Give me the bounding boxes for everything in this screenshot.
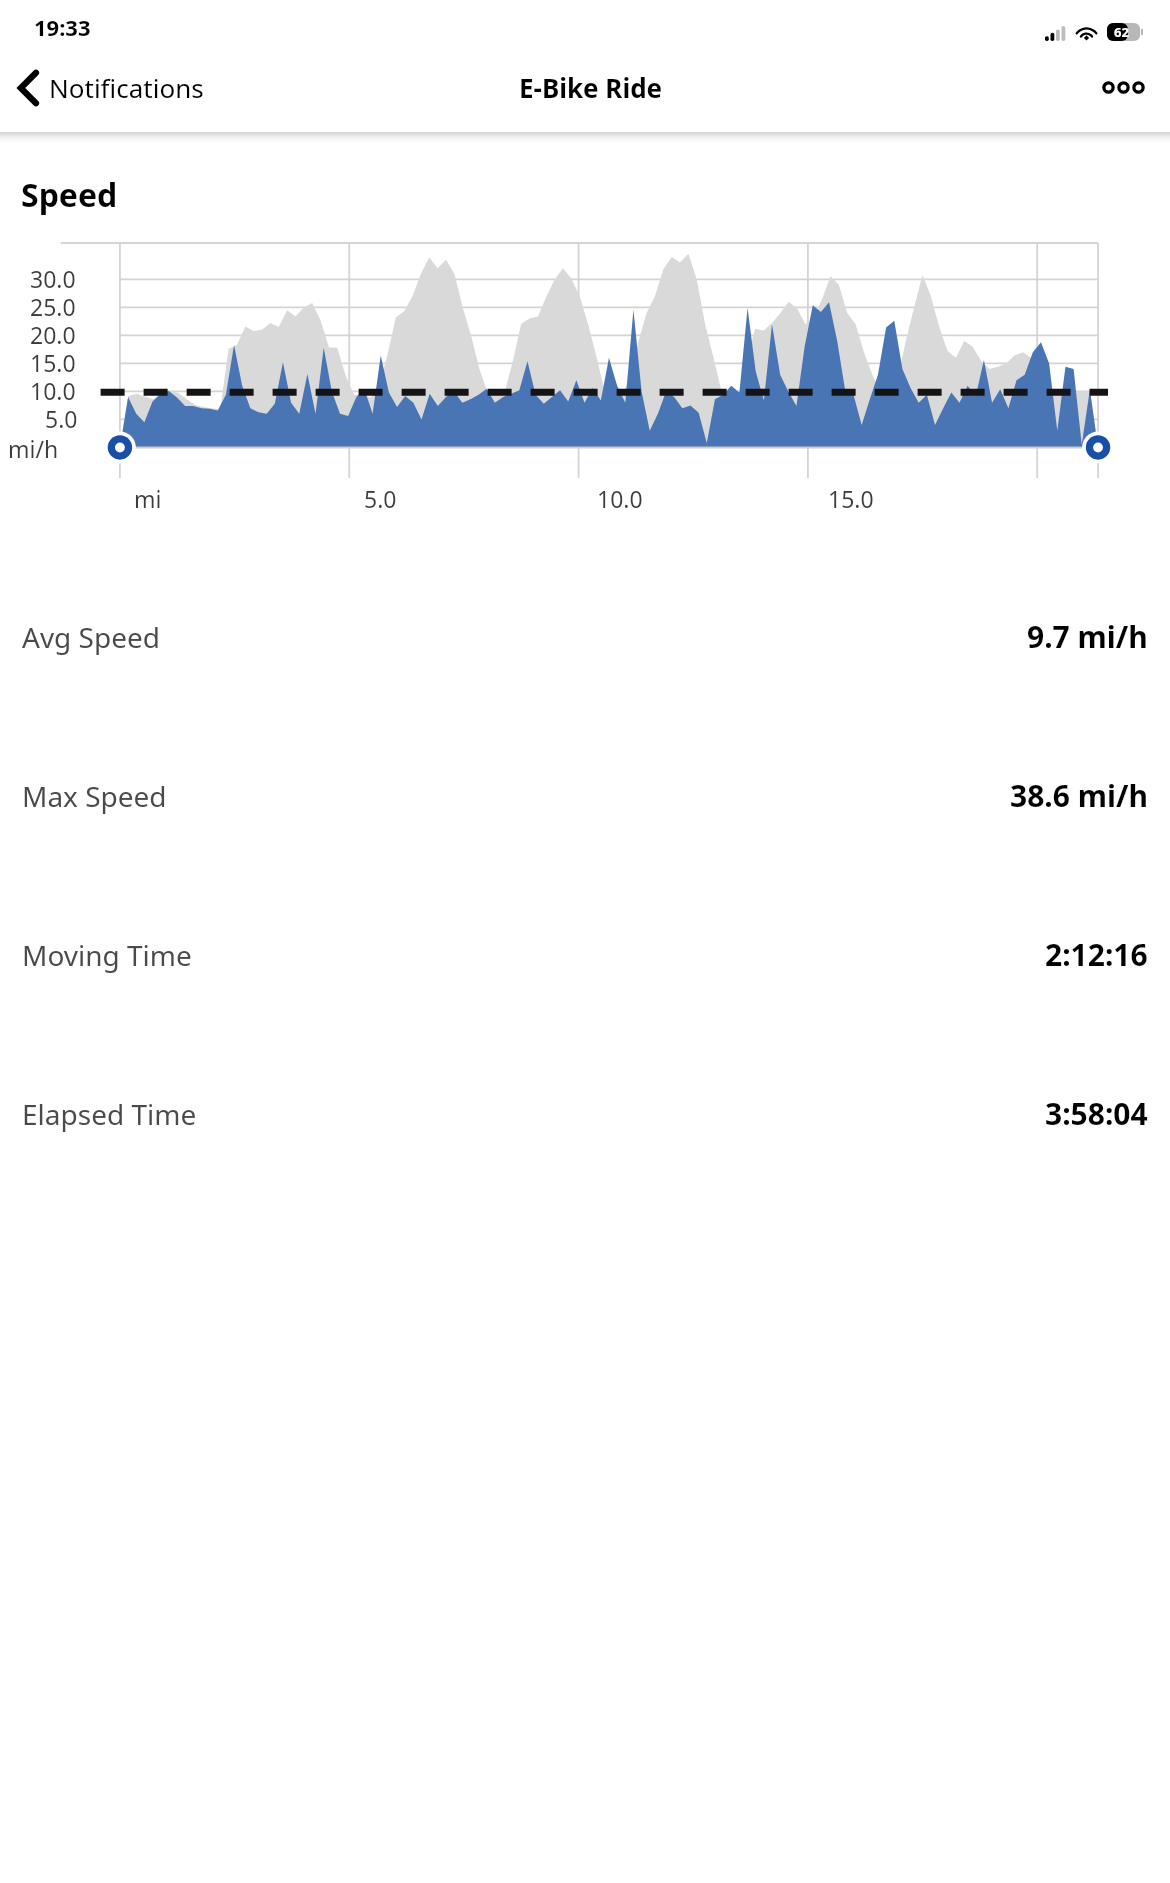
button[interactable]: More options — [1077, 60, 1170, 115]
staticText: 38.6 mi/h — [1010, 775, 1148, 816]
button[interactable]: Max Speed — [0, 716, 1170, 875]
staticText: Notifications — [49, 70, 204, 105]
staticText: Elapsed Time — [22, 1095, 197, 1133]
staticText: 30.0 — [30, 263, 76, 294]
staticText: 3:58:04 — [1045, 1093, 1148, 1134]
staticText: 15.0 — [828, 483, 874, 514]
button[interactable]: Avg Speed — [0, 557, 1170, 716]
staticText: 19:33 — [34, 12, 91, 42]
staticText: 9.7 mi/h — [1027, 616, 1148, 657]
staticText: 10.0 — [30, 375, 76, 406]
staticText: 62 — [1114, 23, 1129, 41]
staticText: 5.0 — [364, 483, 397, 514]
staticText: mi/h — [8, 433, 59, 464]
staticText: mi — [134, 483, 162, 514]
staticText: Avg Speed — [22, 618, 161, 656]
staticText: E-Bike Ride — [519, 70, 663, 105]
staticText: 15.0 — [30, 347, 76, 378]
staticText: Speed — [21, 173, 118, 217]
staticText: 25.0 — [30, 291, 76, 322]
button[interactable]: Moving Time — [0, 875, 1170, 1034]
staticText: 20.0 — [30, 319, 76, 350]
staticText: 2:12:16 — [1045, 934, 1148, 975]
button[interactable]: Back to Notifications — [0, 58, 216, 117]
staticText: 10.0 — [597, 483, 643, 514]
staticText: 5.0 — [45, 403, 78, 434]
button[interactable]: Elapsed Time — [0, 1034, 1170, 1193]
staticText: Moving Time — [22, 936, 192, 974]
staticText: Max Speed — [22, 777, 167, 815]
